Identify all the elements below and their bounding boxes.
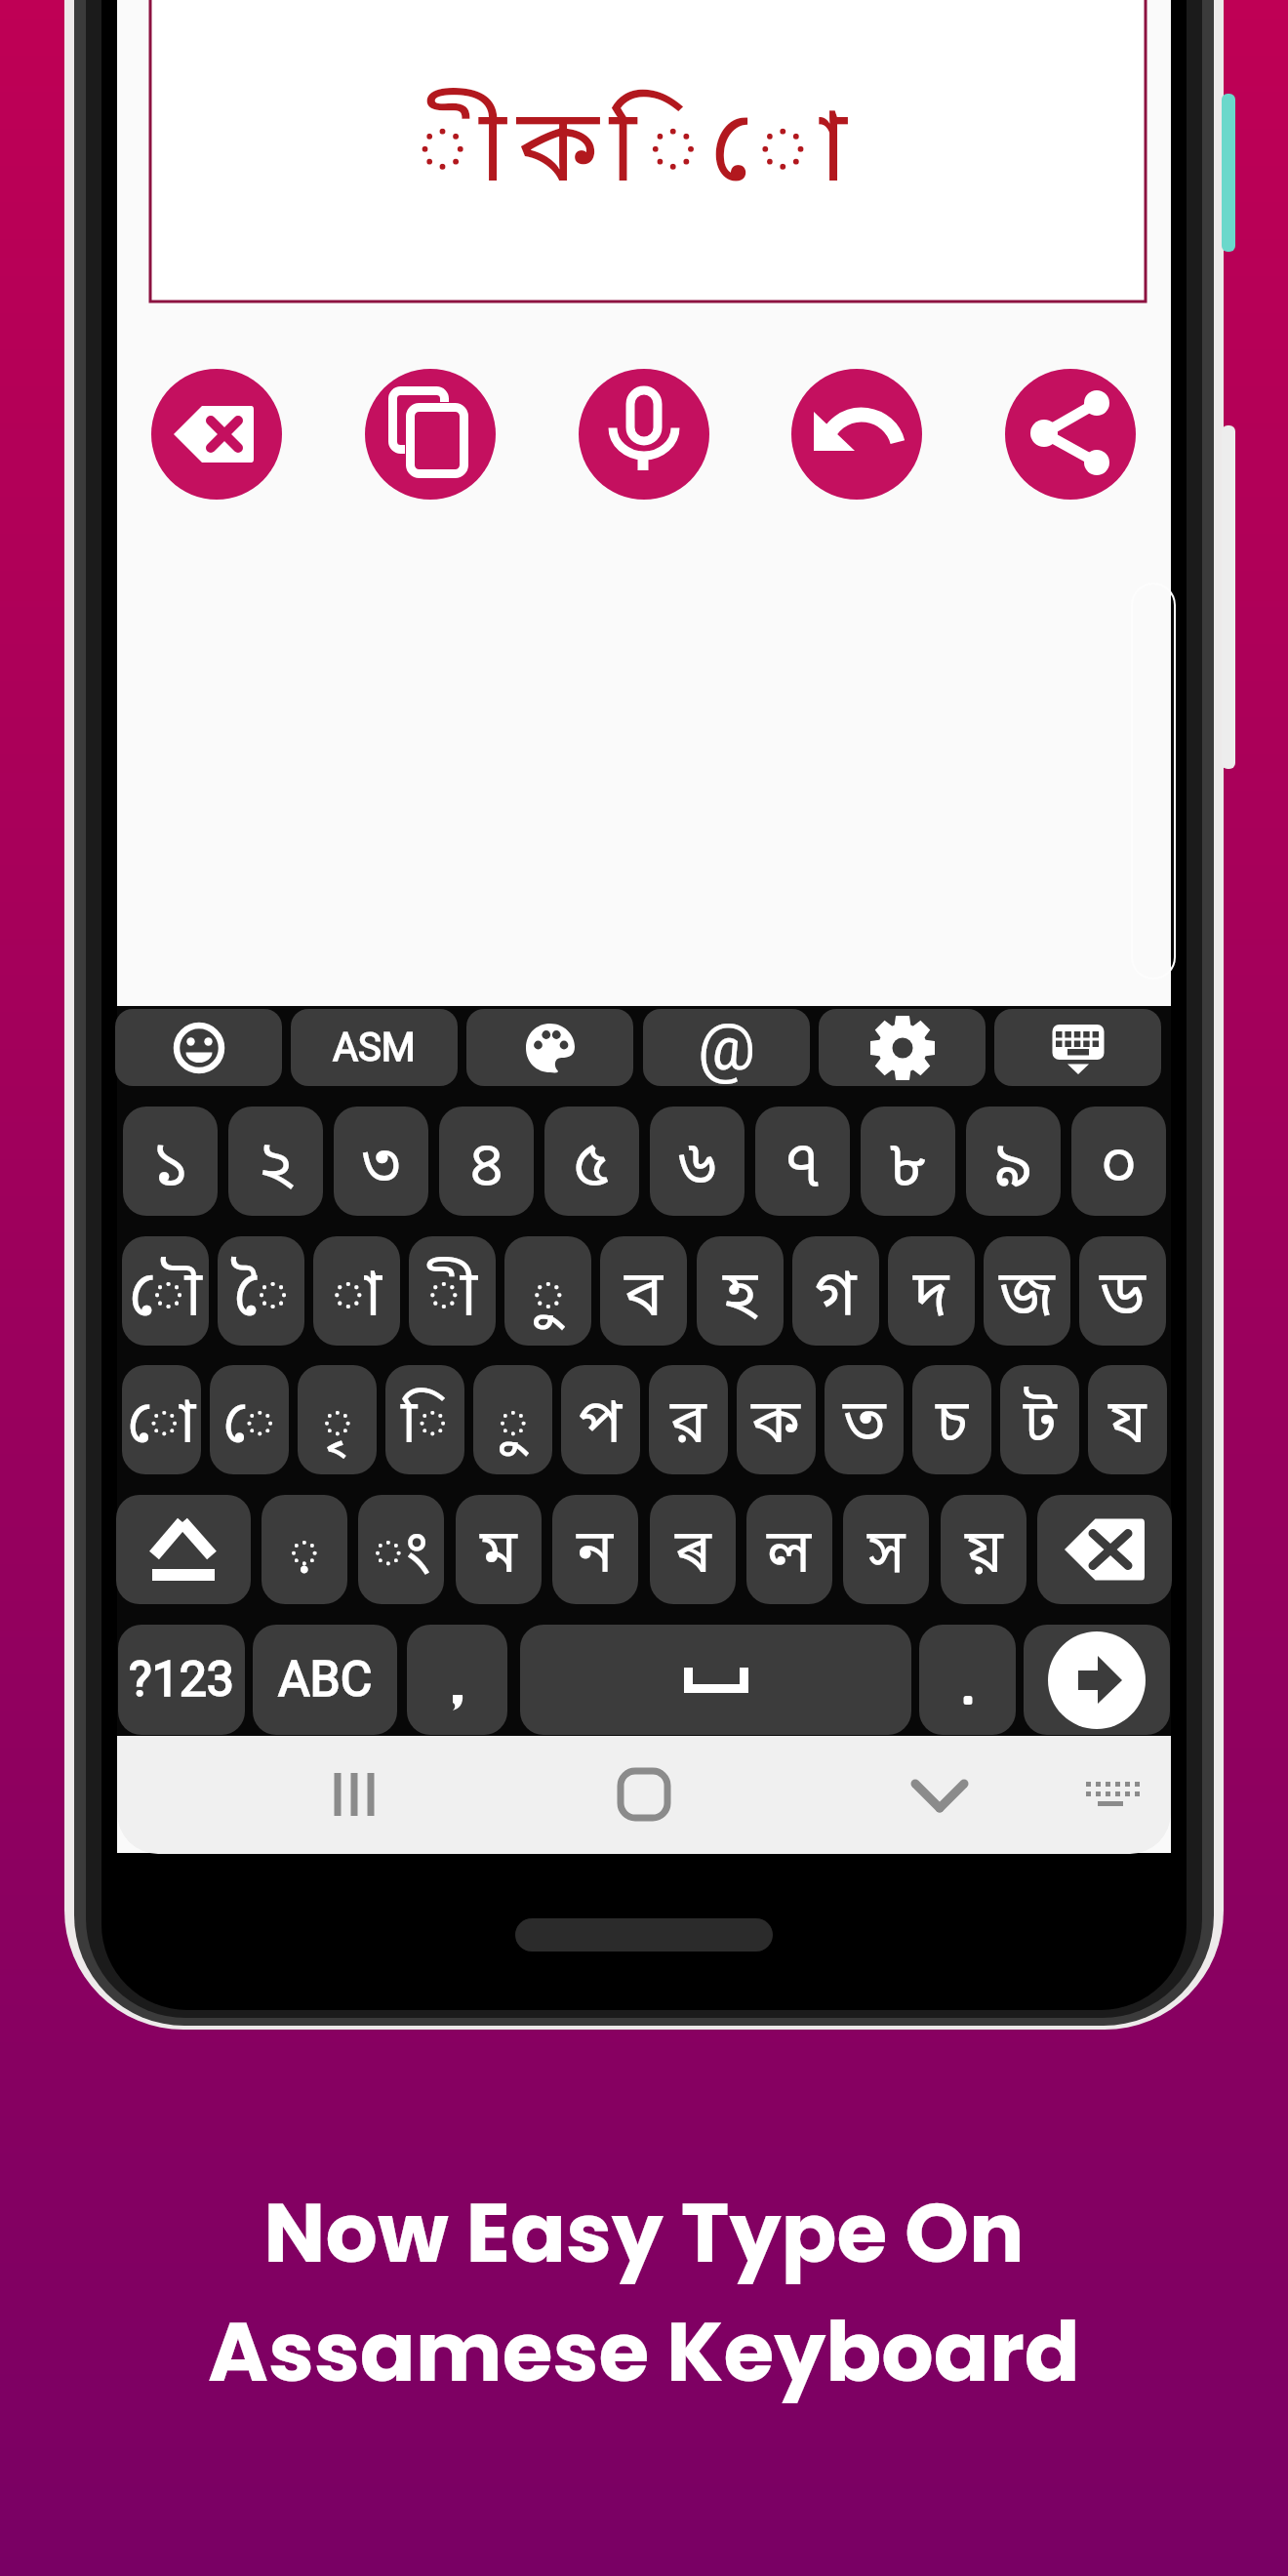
button[interactable]: Space xyxy=(520,1625,911,1735)
staticText: ক xyxy=(751,1387,801,1467)
button[interactable]: Shift xyxy=(116,1495,251,1604)
button[interactable]: হ xyxy=(697,1236,784,1346)
button[interactable]: Change keyboard xyxy=(1062,1746,1159,1843)
staticText: য xyxy=(1108,1387,1147,1467)
button[interactable]: ৰ xyxy=(650,1495,736,1604)
button[interactable]: Voice input xyxy=(579,369,709,500)
staticText: @ xyxy=(698,1010,756,1085)
button[interactable]: ৮ xyxy=(861,1107,955,1216)
staticText: ন xyxy=(577,1516,614,1596)
staticText: ABC xyxy=(278,1651,373,1709)
staticText: ASM xyxy=(333,1025,416,1070)
button[interactable]: চ xyxy=(912,1365,991,1474)
button[interactable]: ম xyxy=(456,1495,542,1604)
button[interactable]: য xyxy=(1088,1365,1167,1474)
staticText: ৰ xyxy=(675,1516,711,1596)
button[interactable]: ৪ xyxy=(439,1107,534,1216)
staticText: ত xyxy=(843,1387,886,1467)
staticText: য় xyxy=(965,1516,1003,1596)
button[interactable]: ◌ৌ xyxy=(122,1236,209,1346)
button[interactable]: Theme xyxy=(466,1009,633,1086)
button[interactable]: ২ xyxy=(228,1107,323,1216)
button[interactable]: Emoji xyxy=(115,1009,282,1086)
button[interactable]: Recent apps xyxy=(305,1746,403,1843)
button[interactable]: ল xyxy=(746,1495,832,1604)
button[interactable]: ASM language xyxy=(291,1009,458,1086)
button[interactable]: Share xyxy=(1005,369,1136,500)
button[interactable]: Backspace xyxy=(1037,1495,1172,1604)
button[interactable]: ◌া xyxy=(313,1236,400,1346)
staticText: ১ xyxy=(151,1126,190,1211)
button[interactable]: Hide keyboard xyxy=(994,1009,1161,1086)
button[interactable]: Settings xyxy=(819,1009,986,1086)
button[interactable]: ক xyxy=(737,1365,816,1474)
button[interactable]: গ xyxy=(792,1236,879,1346)
staticText: ◌ি xyxy=(401,1387,449,1467)
staticText: Now Easy Type On xyxy=(263,2176,1025,2291)
button[interactable]: Symbols xyxy=(118,1625,245,1735)
staticText: ৬ xyxy=(678,1126,717,1211)
button[interactable]: Home xyxy=(595,1746,693,1843)
button[interactable]: ৯ xyxy=(966,1107,1061,1216)
button[interactable]: Latin letters xyxy=(253,1625,397,1735)
button[interactable]: ৫ xyxy=(544,1107,639,1216)
button[interactable]: ◌ে xyxy=(210,1365,289,1474)
staticText: ২ xyxy=(257,1126,296,1211)
button[interactable]: ◌ো xyxy=(122,1365,201,1474)
button[interactable]: য় xyxy=(941,1495,1026,1604)
button[interactable]: স xyxy=(843,1495,929,1604)
button[interactable]: ত xyxy=(825,1365,904,1474)
staticText: ট xyxy=(1024,1387,1057,1467)
button[interactable]: Undo xyxy=(791,369,922,500)
staticText: ◌ে xyxy=(222,1387,276,1467)
staticText: ◌ো xyxy=(127,1387,196,1467)
staticText: ৮ xyxy=(889,1126,928,1211)
staticText: ◌ী xyxy=(427,1256,478,1341)
button[interactable]: ◌ি xyxy=(385,1365,464,1474)
button[interactable]: ন xyxy=(552,1495,638,1604)
button[interactable]: র xyxy=(649,1365,728,1474)
button[interactable]: প xyxy=(561,1365,640,1474)
staticText: স xyxy=(867,1516,906,1596)
staticText: ল xyxy=(767,1516,812,1596)
staticText: ◌ু xyxy=(532,1256,565,1341)
staticText: ◌় xyxy=(289,1516,320,1596)
button[interactable]: ট xyxy=(1000,1365,1079,1474)
button[interactable]: Period xyxy=(919,1625,1016,1735)
staticText: ৪ xyxy=(467,1126,506,1211)
staticText: ◌ৈ xyxy=(233,1256,290,1341)
button[interactable]: দ xyxy=(888,1236,975,1346)
button[interactable]: ৬ xyxy=(650,1107,745,1216)
staticText: প xyxy=(579,1387,623,1467)
staticText: Assamese Keyboard xyxy=(208,2295,1080,2410)
button[interactable]: ড xyxy=(1079,1236,1166,1346)
button[interactable]: Delete xyxy=(151,369,282,500)
button[interactable]: Comma xyxy=(407,1625,507,1735)
button[interactable]: ◌ং xyxy=(358,1495,444,1604)
button[interactable]: ◌ু xyxy=(473,1365,552,1474)
button[interactable]: ◌ী xyxy=(409,1236,496,1346)
button[interactable]: ◌ীক◌ি◌ো xyxy=(150,0,1146,302)
staticText: ◌া xyxy=(332,1256,382,1341)
button[interactable]: ০ xyxy=(1071,1107,1166,1216)
staticText: ম xyxy=(480,1516,517,1596)
staticText: ◌ৌ xyxy=(129,1256,203,1341)
button[interactable]: ◌ু xyxy=(504,1236,591,1346)
button[interactable]: ◌ৈ xyxy=(218,1236,304,1346)
button[interactable]: ◌় xyxy=(262,1495,347,1604)
button[interactable]: ১ xyxy=(123,1107,218,1216)
button[interactable]: জ xyxy=(984,1236,1070,1346)
button[interactable]: At sign xyxy=(643,1009,810,1086)
staticText: গ xyxy=(815,1256,857,1341)
staticText: জ xyxy=(999,1256,1055,1341)
button[interactable]: Hide keyboard xyxy=(891,1746,988,1843)
button[interactable]: Copy xyxy=(365,369,496,500)
staticText: হ xyxy=(723,1256,758,1341)
staticText: র xyxy=(670,1387,706,1467)
staticText: ৫ xyxy=(573,1126,612,1211)
button[interactable]: ব xyxy=(600,1236,687,1346)
button[interactable]: Enter xyxy=(1024,1625,1170,1735)
button[interactable]: ৩ xyxy=(334,1107,428,1216)
button[interactable]: ◌ৃ xyxy=(298,1365,377,1474)
button[interactable]: ৭ xyxy=(755,1107,850,1216)
